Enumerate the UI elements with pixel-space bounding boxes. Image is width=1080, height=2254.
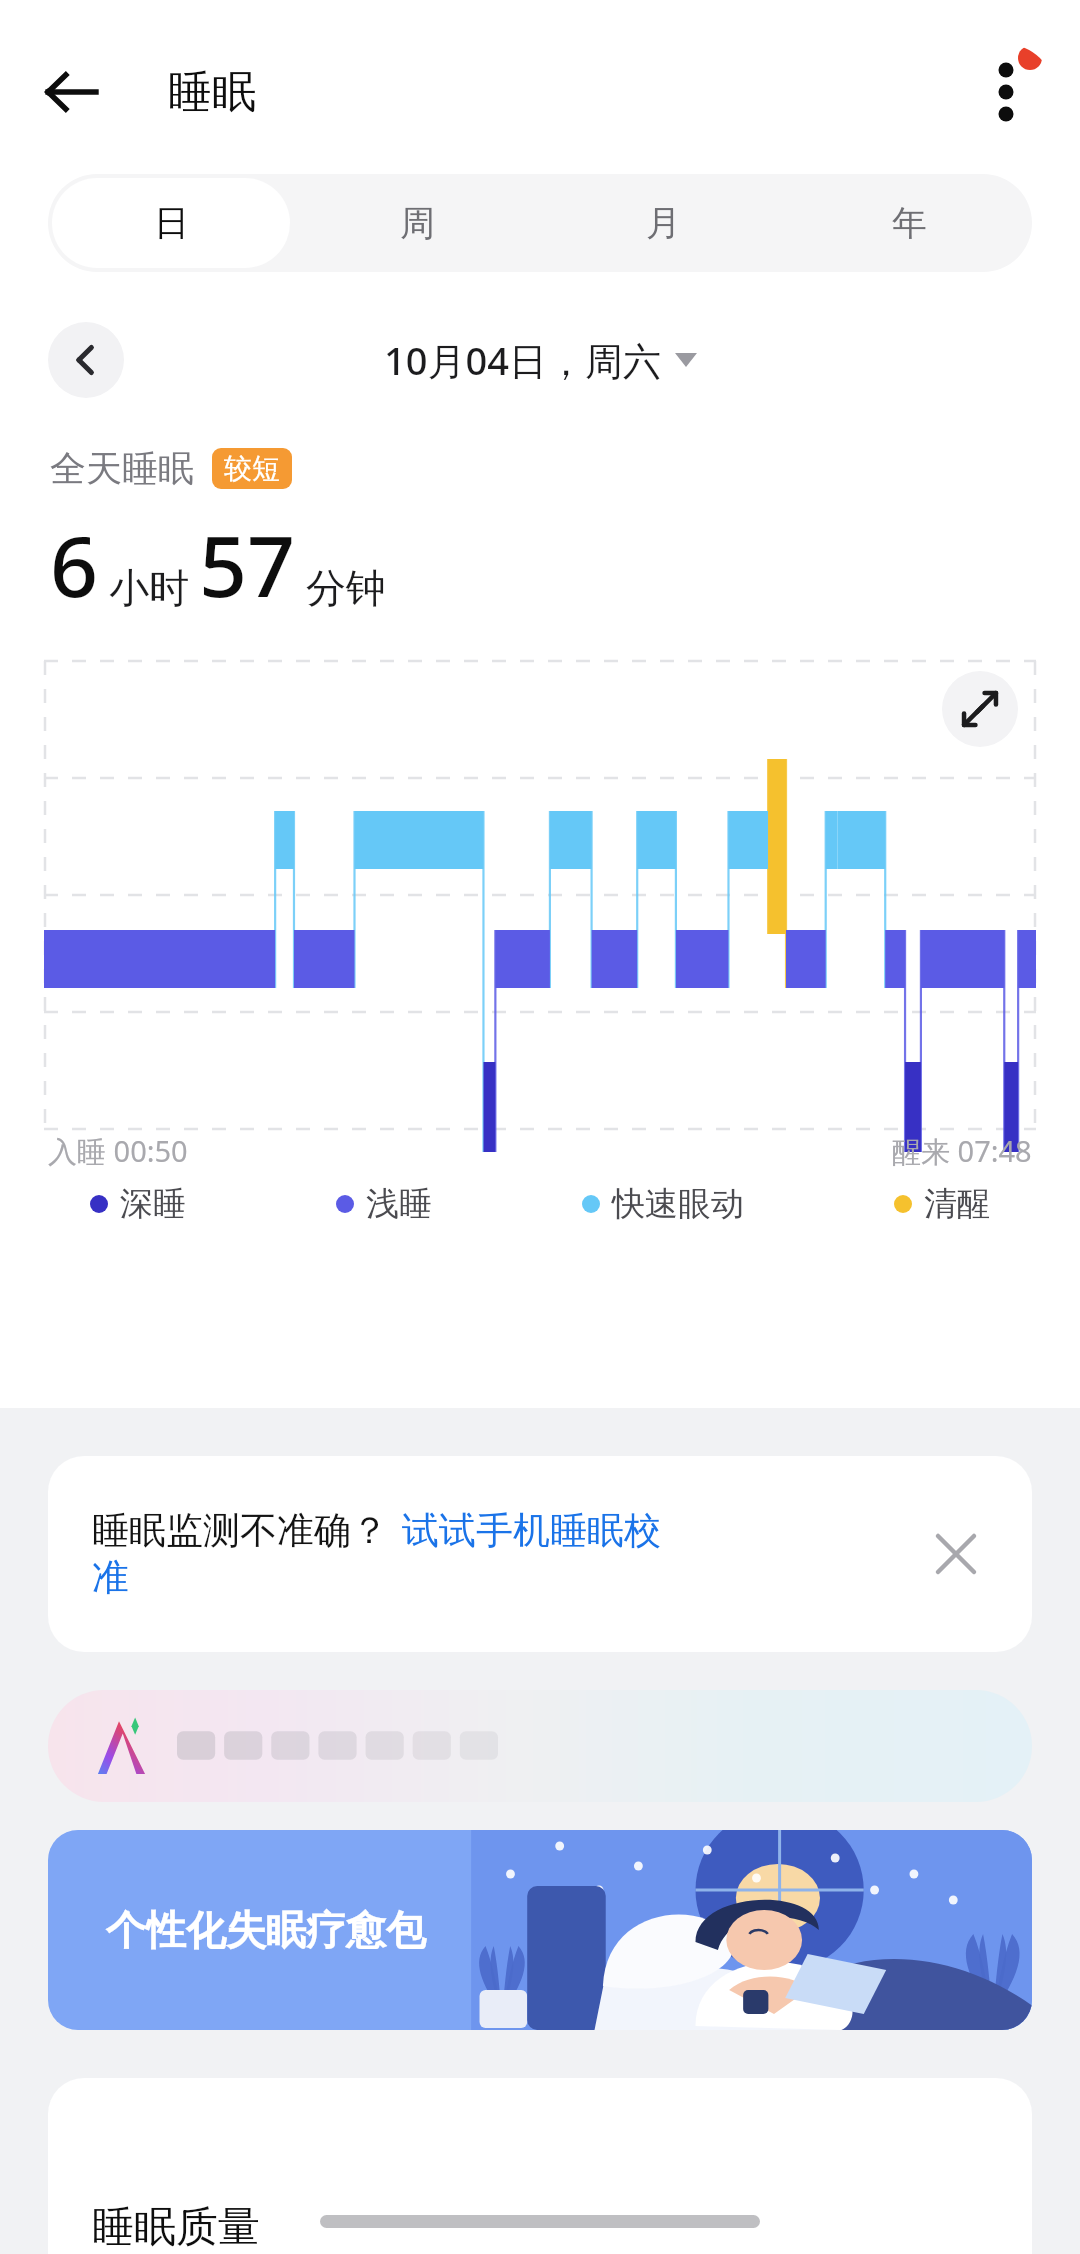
button[interactable]: Previous day [48,322,124,398]
button[interactable]: 周 [298,178,536,268]
staticText: 月 [646,201,681,245]
button[interactable]: 日 [52,178,290,268]
staticText: 清醒 [924,1183,990,1225]
staticText: 6 [50,507,99,621]
button[interactable]: 睡眠质量 [48,2078,1032,2254]
button[interactable]: 年 [790,178,1028,268]
button[interactable]: 月 [544,178,782,268]
staticText: 57 [199,507,296,621]
button[interactable]: 10月04日，周六 [384,334,697,386]
button[interactable]: 个性化失眠疗愈包 [48,1830,1032,2030]
staticText: 较短 [224,451,280,486]
staticText: 醒来 07:48 [892,1131,1032,1171]
staticText: 深睡 [120,1183,186,1225]
staticText: 全天睡眠 [50,446,194,491]
button[interactable]: 睡眠监测不准确？ [48,1456,1032,1652]
button[interactable]: Expand chart [942,671,1018,747]
staticText: 浅睡 [366,1183,432,1225]
staticText: 小时 [109,563,189,613]
button[interactable]: Dismiss [920,1518,992,1590]
staticText: 试试手机睡眠校 [402,1507,661,1554]
staticText: 分钟 [306,563,386,613]
staticText: 睡眠监测不准确？ [92,1507,388,1554]
staticText: 日 [154,201,189,245]
staticText: 10月04日，周六 [384,334,661,386]
staticText: 周 [400,201,435,245]
staticText: 准 [92,1554,129,1601]
staticText: 个性化失眠疗愈包 [106,1905,426,1955]
button[interactable]: More options [958,44,1054,140]
staticText: 睡眠 [168,65,256,120]
staticText: 快速眼动 [612,1183,744,1225]
button[interactable] [48,1690,1032,1802]
staticText: 年 [892,201,927,245]
button[interactable]: Back [28,49,114,135]
staticText: 入睡 00:50 [48,1131,188,1171]
staticText: 睡眠质量 [92,2201,260,2254]
